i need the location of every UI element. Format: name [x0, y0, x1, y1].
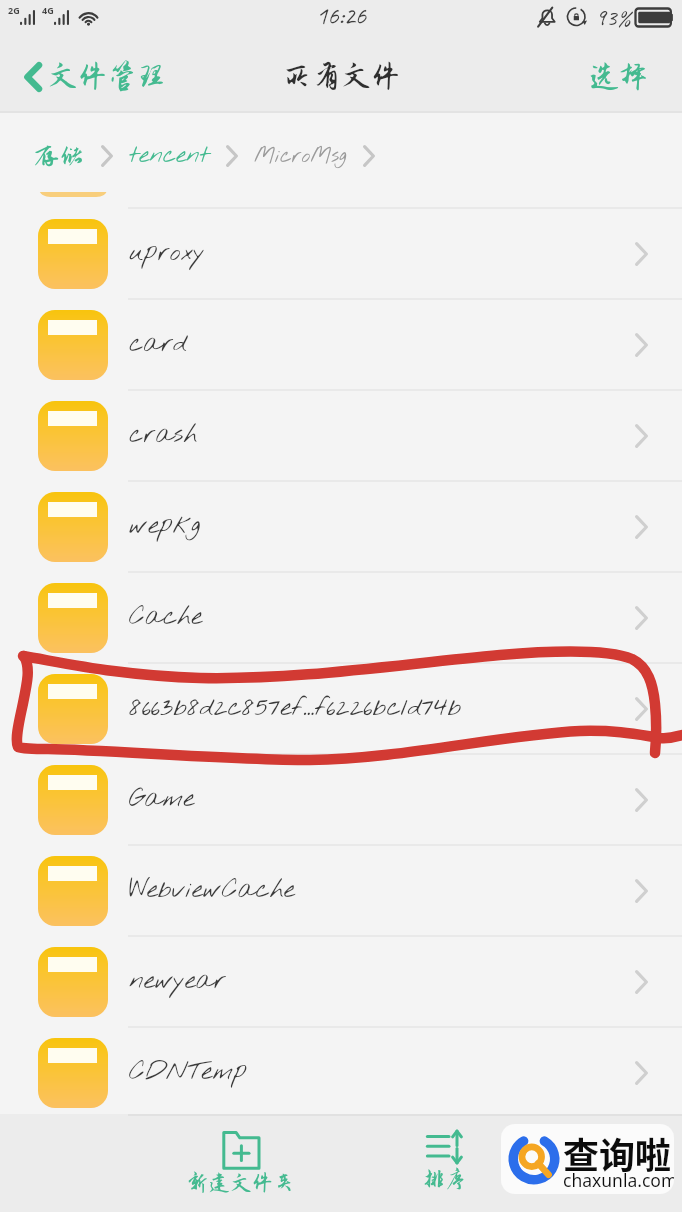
- button[interactable]: Game: [0, 753, 682, 844]
- staticText: uproxy: [129, 236, 635, 271]
- button[interactable]: crash: [0, 389, 682, 480]
- button[interactable]: 存储: [34, 134, 85, 178]
- button[interactable]: 8663b8d2c857ef...f6226bc1d74b: [0, 662, 682, 753]
- staticText: crash: [129, 418, 635, 453]
- button[interactable]: card: [0, 298, 682, 389]
- button[interactable]: MicroMsg: [254, 134, 347, 178]
- staticText: 文件管理: [48, 60, 167, 93]
- staticText: newyear: [129, 964, 635, 999]
- staticText: CDNTemp: [129, 1055, 635, 1090]
- staticText: chaxunla.com: [563, 1168, 674, 1192]
- staticText: 16:26: [316, 0, 366, 32]
- staticText: MicroMsg: [254, 142, 347, 170]
- staticText: tencent: [129, 140, 210, 172]
- button[interactable]: WebviewCache: [0, 844, 682, 935]
- staticText: 存储: [34, 142, 85, 170]
- staticText: 查询啦: [563, 1127, 672, 1179]
- staticText: wepkg: [129, 509, 635, 544]
- staticText: 8663b8d2c857ef...f6226bc1d74b: [129, 691, 635, 726]
- button[interactable]: tencent: [129, 132, 210, 180]
- staticText: 93%: [595, 2, 631, 32]
- button[interactable]: Cache: [0, 571, 682, 662]
- button[interactable]: wepkg: [0, 480, 682, 571]
- button[interactable]: 排序: [409, 1125, 481, 1195]
- button[interactable]: 选择: [566, 40, 682, 113]
- staticText: 2G: [8, 4, 20, 16]
- button[interactable]: 文件管理: [0, 40, 185, 113]
- staticText: Game: [129, 782, 635, 817]
- staticText: 所有文件: [282, 60, 401, 93]
- staticText: Cache: [129, 600, 635, 635]
- staticText: card: [129, 327, 635, 362]
- staticText: 选择: [590, 61, 648, 93]
- staticText: 4G: [42, 4, 54, 16]
- button[interactable]: uproxy: [0, 207, 682, 298]
- button[interactable]: CDNTemp: [0, 1026, 682, 1114]
- staticText: 新建文件夹: [187, 1171, 295, 1195]
- button[interactable]: newyear: [0, 935, 682, 1026]
- staticText: 排序: [423, 1167, 467, 1191]
- staticText: WebviewCache: [129, 873, 635, 908]
- button[interactable]: 新建文件夹: [173, 1125, 309, 1199]
